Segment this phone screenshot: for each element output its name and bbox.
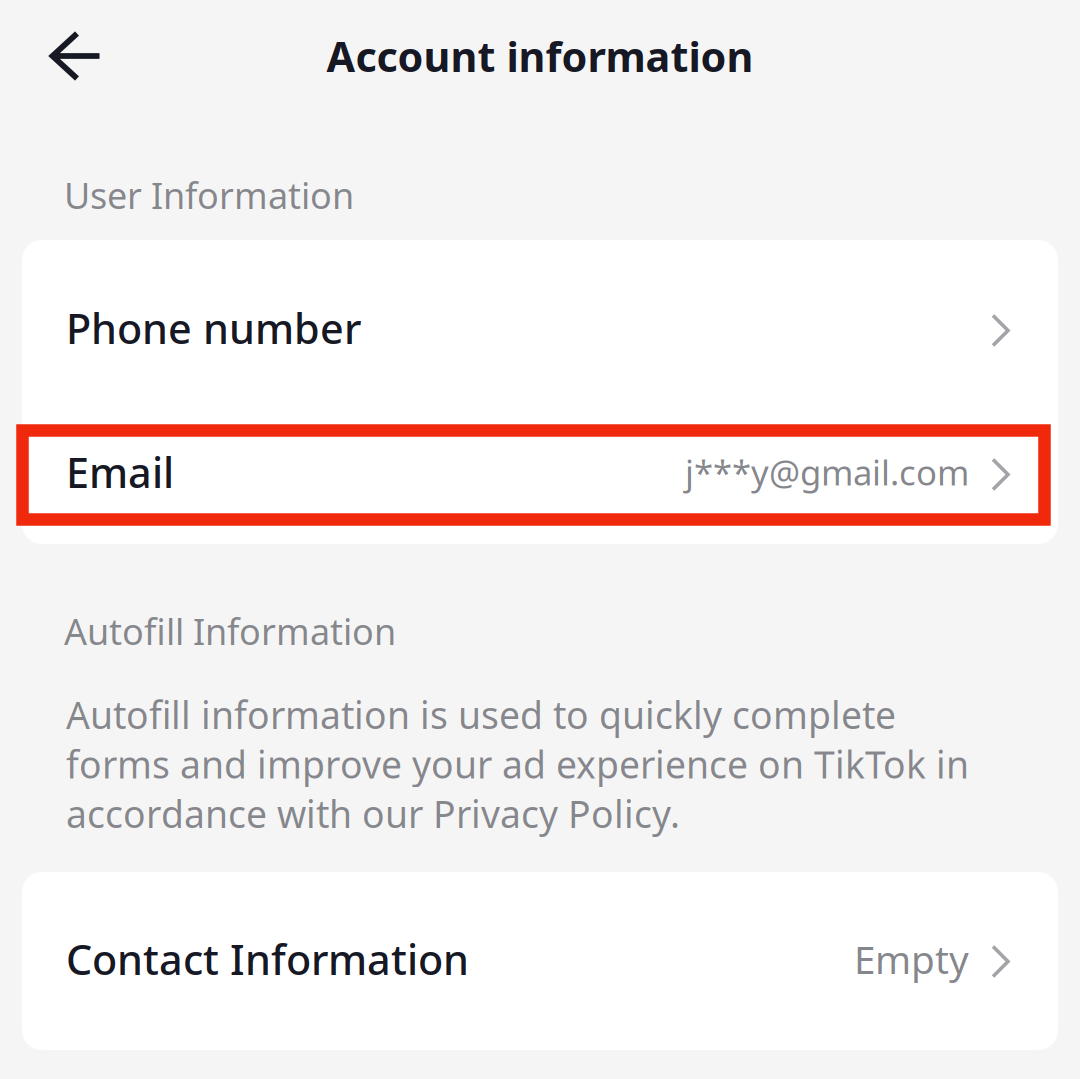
button[interactable]: Phone number [22,256,1058,400]
staticText: Autofill information is used to quickly … [66,690,969,838]
staticText: Phone number [66,301,361,355]
staticText: User Information [64,171,354,219]
button[interactable]: Back [0,0,146,112]
button[interactable]: Email [22,400,1058,544]
staticText: Autofill Information [64,607,396,655]
button[interactable]: Contact Information [22,872,1058,1046]
staticText: Empty [854,933,969,985]
staticText: Account information [326,29,753,83]
staticText: j***y@gmail.com [685,449,969,495]
staticText: Email [66,445,174,499]
staticText: Contact Information [66,932,469,986]
